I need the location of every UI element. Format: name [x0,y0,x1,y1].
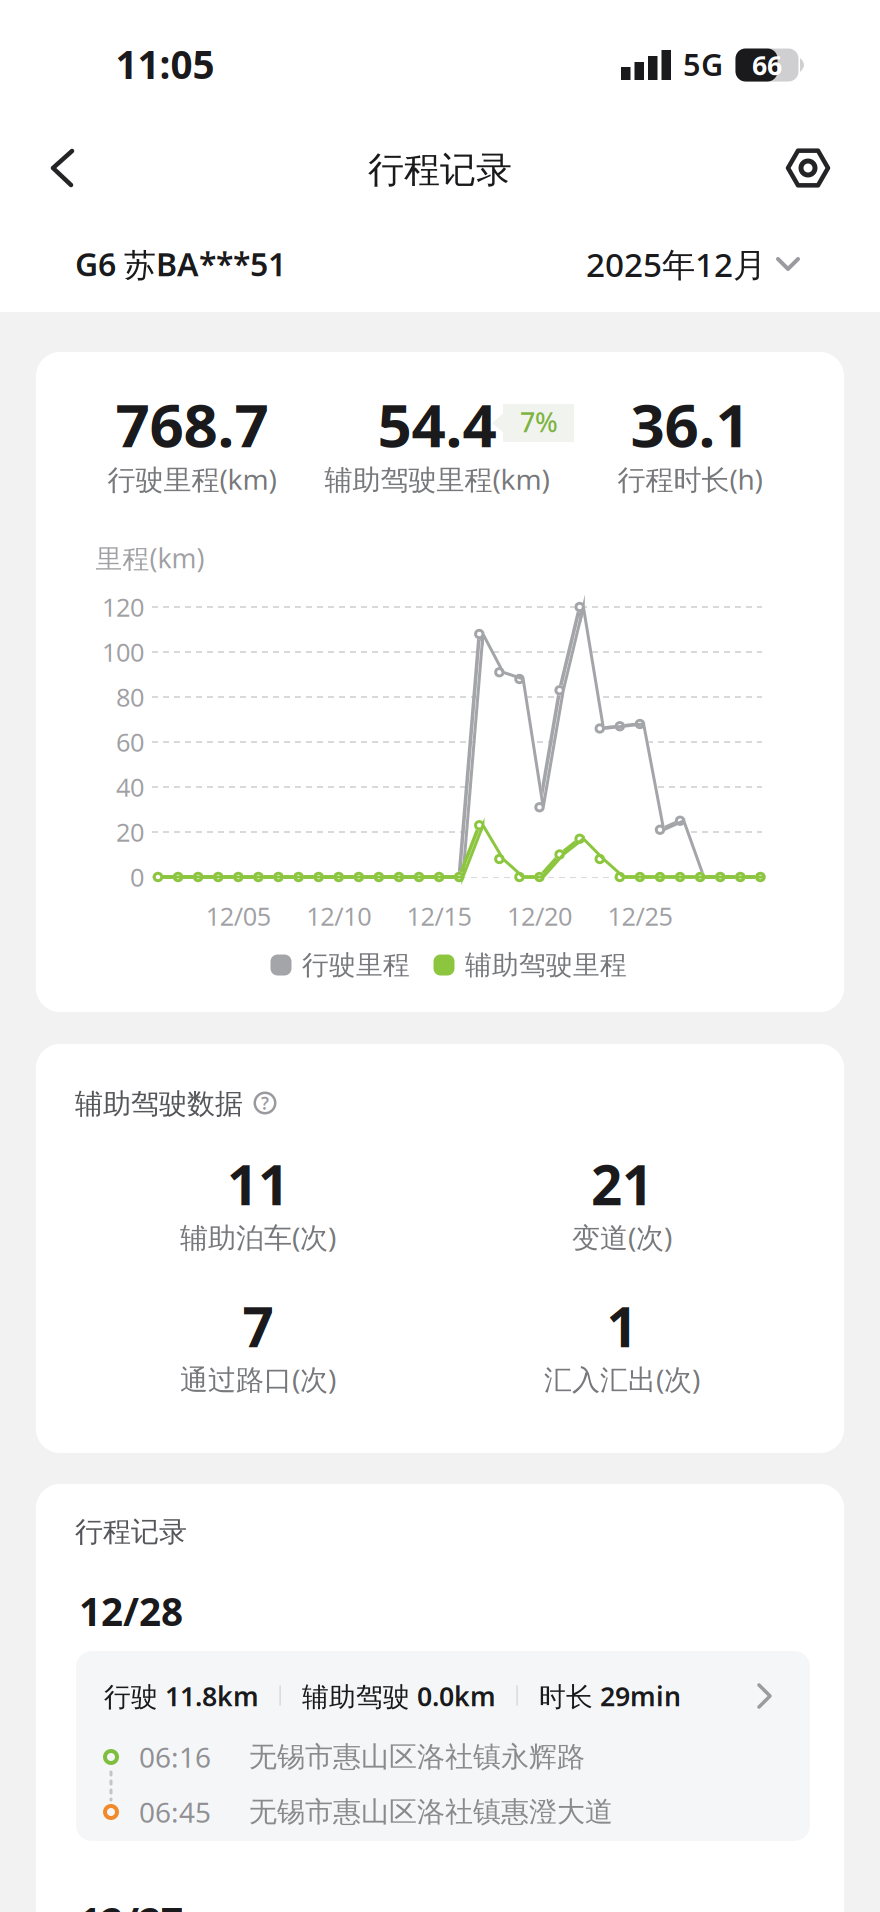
staticText: 7 [242,1290,273,1362]
staticText: 768.7 [115,384,268,464]
staticText: 丨 [507,1683,528,1709]
staticText: 12/27 [79,1895,183,1912]
staticText: 21 [591,1148,653,1220]
button[interactable]: Back [33,138,93,198]
staticText: 里程(km) [95,540,204,576]
staticText: 100 [102,635,144,669]
staticText: 0 [130,860,144,894]
staticText: 1 [606,1290,637,1362]
staticText: ? [261,1091,269,1114]
staticText: 36.1 [630,384,749,464]
staticText: 40 [116,770,144,804]
staticText: 12/25 [607,899,672,933]
staticText: 11:05 [115,38,214,90]
button[interactable]: G6 苏BA***51 [75,243,286,285]
staticText: 无锡市惠山区洛社镇永辉路 [249,1740,585,1774]
staticText: 7% [520,404,558,440]
staticText: 辅助驾驶里程(km) [324,460,549,498]
staticText: 无锡市惠山区洛社镇惠澄大道 [249,1795,613,1829]
staticText: 辅助驾驶里程 [465,949,627,981]
button[interactable]: Help [249,1087,281,1119]
staticText: G6 苏BA***51 [75,243,286,285]
staticText: 辅助驾驶 0.0km [302,1678,496,1714]
staticText: 行程记录 [75,1515,187,1549]
staticText: 行驶里程 [302,949,410,981]
staticText: 12/15 [407,899,472,933]
staticText: 80 [116,680,144,714]
staticText: 12/20 [507,899,572,933]
staticText: 60 [116,725,144,759]
staticText: 变道(次) [572,1218,672,1256]
staticText: 12/28 [79,1585,183,1637]
staticText: 行驶里程(km) [107,460,276,498]
staticText: 06:16 [139,1738,211,1776]
staticText: 行程记录 [368,148,512,192]
button[interactable]: 2025年12月 [586,242,800,286]
button[interactable]: Settings [776,136,840,200]
staticText: 5G [683,44,723,84]
staticText: 行程时长(h) [617,460,762,498]
staticText: 丨 [270,1683,291,1709]
staticText: 06:45 [139,1793,211,1831]
staticText: 汇入汇出(次) [544,1360,700,1398]
staticText: 行驶 11.8km [104,1678,259,1714]
staticText: 12/05 [206,899,271,933]
staticText: 2025年12月 [586,242,766,286]
staticText: 辅助泊车(次) [180,1218,336,1256]
staticText: 66 [752,47,782,83]
staticText: 120 [102,590,144,624]
staticText: 辅助驾驶数据 [75,1087,243,1121]
staticText: 通过路口(次) [180,1360,336,1398]
staticText: 20 [116,815,144,849]
staticText: 11 [227,1148,289,1220]
button[interactable]: 行驶 11.8km [76,1651,810,1841]
staticText: 54.4 [377,384,496,464]
staticText: 时长 29min [539,1678,681,1714]
staticText: 12/10 [306,899,371,933]
